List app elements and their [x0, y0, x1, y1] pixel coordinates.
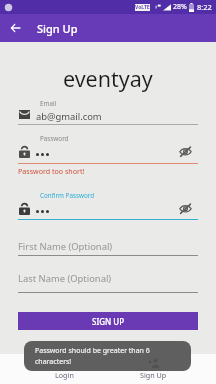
staticText: eventyay	[63, 64, 153, 93]
staticText: Confirm Password	[40, 191, 95, 200]
staticText: Sign Up	[140, 370, 167, 380]
staticText: Password	[40, 134, 69, 143]
button[interactable]: Login	[0, 354, 108, 384]
button[interactable]: Toggle confirm password visibility	[178, 201, 193, 216]
staticText: 28%	[173, 2, 187, 12]
staticText: Password should be greater than 6 charac…	[35, 346, 151, 366]
staticText: 8:22	[197, 2, 212, 12]
button[interactable]: Toggle password visibility	[178, 144, 193, 159]
staticText: Last Name (Optional)	[18, 272, 112, 285]
staticText: Login	[55, 370, 74, 380]
staticText: VoLTE	[135, 4, 150, 11]
staticText: Sign Up	[37, 21, 78, 36]
staticText: Password too short!	[18, 166, 85, 176]
staticText: First Name (Optional)	[18, 240, 113, 253]
staticText: SIGN UP	[92, 316, 125, 327]
staticText: ab@gmail.com	[36, 110, 102, 123]
button[interactable]: SIGN UP	[18, 312, 198, 330]
staticText: Email	[40, 99, 57, 108]
button[interactable]: Sign Up	[108, 354, 216, 384]
button[interactable]: Back	[0, 14, 30, 42]
